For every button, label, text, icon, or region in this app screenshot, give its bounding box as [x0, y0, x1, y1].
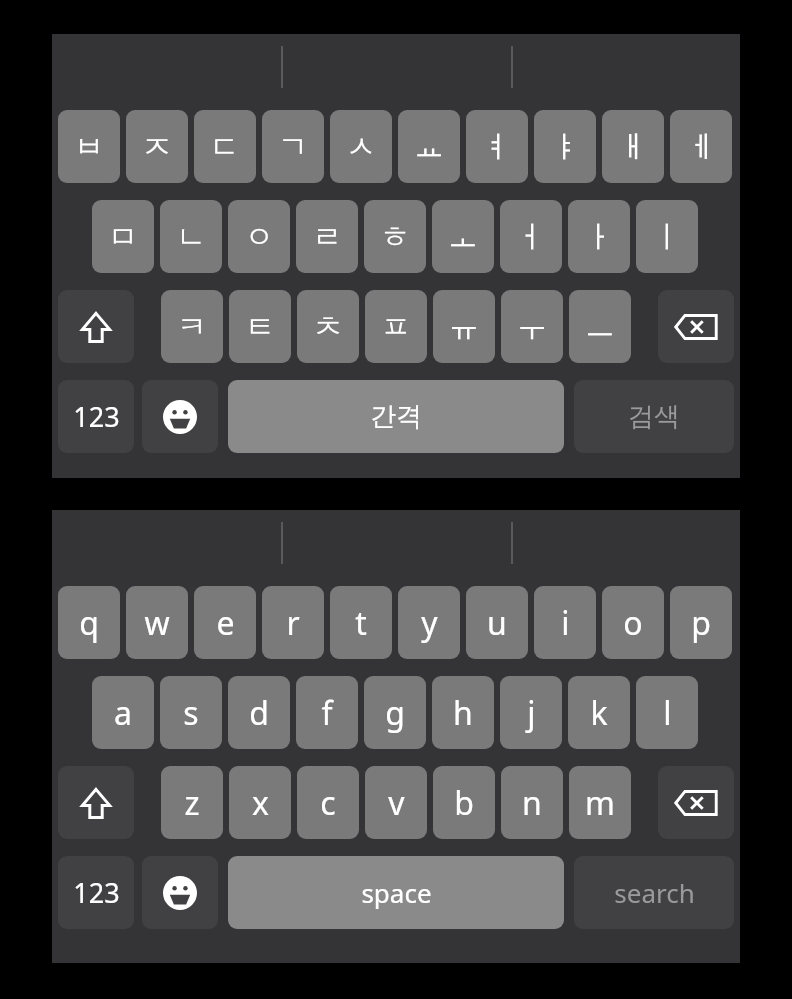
staticText: u: [487, 601, 507, 645]
button[interactable]: ㅣ: [636, 200, 698, 273]
button[interactable]: q: [58, 586, 120, 659]
button[interactable]: ㄱ: [262, 110, 324, 183]
button[interactable]: ㅈ: [126, 110, 188, 183]
button[interactable]: i: [534, 586, 596, 659]
button[interactable]: ㅛ: [398, 110, 460, 183]
button[interactable]: ㅂ: [58, 110, 120, 183]
staticText: ㅅ: [346, 128, 376, 166]
staticText: y: [421, 601, 438, 645]
button[interactable]: ㅌ: [229, 290, 291, 363]
button[interactable]: ㅅ: [330, 110, 392, 183]
button[interactable]: ㅗ: [432, 200, 494, 273]
button[interactable]: 123: [58, 856, 134, 929]
staticText: b: [454, 781, 474, 825]
staticText: p: [691, 601, 711, 645]
button[interactable]: ㅇ: [228, 200, 290, 273]
staticText: ㅣ: [652, 218, 682, 256]
button[interactable]: search: [574, 856, 734, 929]
button[interactable]: ㅡ: [569, 290, 631, 363]
button[interactable]: ㄴ: [160, 200, 222, 273]
button[interactable]: ㄷ: [194, 110, 256, 183]
button[interactable]: b: [433, 766, 495, 839]
staticText: ㅕ: [482, 128, 512, 166]
button[interactable]: n: [501, 766, 563, 839]
staticText: g: [385, 691, 405, 735]
button[interactable]: d: [228, 676, 290, 749]
button[interactable]: u: [466, 586, 528, 659]
staticText: ㄴ: [176, 218, 206, 256]
button[interactable]: a: [92, 676, 154, 749]
button[interactable]: m: [569, 766, 631, 839]
button[interactable]: ㄹ: [296, 200, 358, 273]
button[interactable]: ㅑ: [534, 110, 596, 183]
staticText: ㅈ: [142, 128, 172, 166]
button[interactable]: Backspace: [658, 290, 734, 363]
button[interactable]: 검색: [574, 380, 734, 453]
button[interactable]: 간격: [228, 380, 564, 453]
staticText: ㅏ: [584, 218, 614, 256]
staticText: ㅐ: [618, 128, 648, 166]
staticText: ㅊ: [313, 308, 343, 346]
button[interactable]: Shift: [58, 766, 134, 839]
button[interactable]: ㅊ: [297, 290, 359, 363]
button[interactable]: 123: [58, 380, 134, 453]
button[interactable]: ㅐ: [602, 110, 664, 183]
button[interactable]: ㅜ: [501, 290, 563, 363]
button[interactable]: k: [568, 676, 630, 749]
button[interactable]: l: [636, 676, 698, 749]
staticText: f: [321, 691, 333, 735]
button[interactable]: ㅍ: [365, 290, 427, 363]
button[interactable]: j: [500, 676, 562, 749]
button[interactable]: ㅕ: [466, 110, 528, 183]
staticText: 간격: [370, 400, 422, 433]
staticText: i: [561, 601, 570, 645]
staticText: c: [320, 781, 336, 825]
button[interactable]: y: [398, 586, 460, 659]
button[interactable]: ㅋ: [161, 290, 223, 363]
button[interactable]: p: [670, 586, 732, 659]
button[interactable]: e: [194, 586, 256, 659]
button[interactable]: ㅔ: [670, 110, 732, 183]
staticText: ㅠ: [449, 308, 479, 346]
button[interactable]: Backspace: [658, 766, 734, 839]
button[interactable]: ㅓ: [500, 200, 562, 273]
button[interactable]: Emoji: [142, 856, 218, 929]
button[interactable]: h: [432, 676, 494, 749]
button[interactable]: x: [229, 766, 291, 839]
button[interactable]: r: [262, 586, 324, 659]
button[interactable]: o: [602, 586, 664, 659]
staticText: n: [522, 781, 542, 825]
staticText: ㄹ: [312, 218, 342, 256]
staticText: x: [252, 781, 269, 825]
button[interactable]: s: [160, 676, 222, 749]
staticText: ㅑ: [550, 128, 580, 166]
button[interactable]: ㅎ: [364, 200, 426, 273]
button[interactable]: g: [364, 676, 426, 749]
button[interactable]: c: [297, 766, 359, 839]
staticText: ㄷ: [210, 128, 240, 166]
staticText: s: [183, 691, 199, 735]
staticText: ㄱ: [278, 128, 308, 166]
staticText: m: [585, 781, 615, 825]
staticText: 123: [73, 398, 120, 435]
button[interactable]: ㅠ: [433, 290, 495, 363]
button[interactable]: t: [330, 586, 392, 659]
button[interactable]: f: [296, 676, 358, 749]
staticText: r: [286, 601, 300, 645]
staticText: k: [590, 691, 608, 735]
staticText: o: [623, 601, 643, 645]
button[interactable]: ㅏ: [568, 200, 630, 273]
button[interactable]: Shift: [58, 290, 134, 363]
staticText: e: [216, 601, 235, 645]
staticText: ㅔ: [686, 128, 716, 166]
button[interactable]: Emoji: [142, 380, 218, 453]
button[interactable]: space: [228, 856, 564, 929]
button[interactable]: z: [161, 766, 223, 839]
button[interactable]: v: [365, 766, 427, 839]
staticText: ㅋ: [177, 308, 207, 346]
staticText: ㅡ: [585, 308, 615, 346]
button[interactable]: ㅁ: [92, 200, 154, 273]
staticText: space: [361, 875, 432, 910]
button[interactable]: w: [126, 586, 188, 659]
staticText: d: [249, 691, 269, 735]
